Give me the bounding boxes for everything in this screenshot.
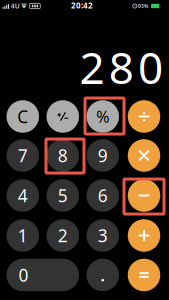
staticText: 9	[98, 144, 108, 167]
staticText: 0	[138, 38, 163, 96]
staticText: 4U	[11, 2, 20, 10]
button[interactable]: Multiply	[128, 139, 160, 172]
staticText: 0	[18, 263, 28, 286]
button[interactable]: Divide	[128, 100, 160, 133]
button[interactable]: Plus	[128, 219, 160, 252]
button[interactable]: Minus	[128, 179, 160, 212]
button[interactable]: Equals	[128, 259, 160, 291]
button[interactable]: Plus minus	[46, 100, 79, 133]
button[interactable]: 9	[86, 139, 119, 172]
staticText: C	[17, 105, 28, 128]
staticText: 93%	[138, 2, 149, 10]
button[interactable]: 5	[46, 179, 79, 212]
button[interactable]: 7	[6, 139, 39, 172]
staticText: 3	[98, 224, 108, 247]
staticText: 2	[80, 38, 105, 96]
button[interactable]: 1	[6, 219, 39, 252]
staticText: %	[96, 106, 109, 127]
staticText: 8	[58, 144, 68, 167]
staticText: 2	[58, 224, 68, 247]
button[interactable]: 0	[6, 259, 79, 291]
button[interactable]: Percent	[86, 100, 119, 133]
button[interactable]: 2	[46, 219, 79, 252]
staticText: 8	[109, 38, 134, 96]
button[interactable]: 8	[46, 139, 79, 172]
button[interactable]: 3	[86, 219, 119, 252]
staticText: 1	[18, 224, 28, 247]
staticText: 20:42	[71, 0, 93, 11]
button[interactable]: 6	[86, 179, 119, 212]
button[interactable]: Decimal point	[86, 259, 119, 291]
staticText: 5	[58, 184, 68, 207]
button[interactable]: 4	[6, 179, 39, 212]
staticText: 7	[18, 144, 28, 167]
staticText: 4	[18, 184, 28, 207]
button[interactable]: Clear	[6, 100, 39, 133]
staticText: 6	[98, 184, 108, 207]
